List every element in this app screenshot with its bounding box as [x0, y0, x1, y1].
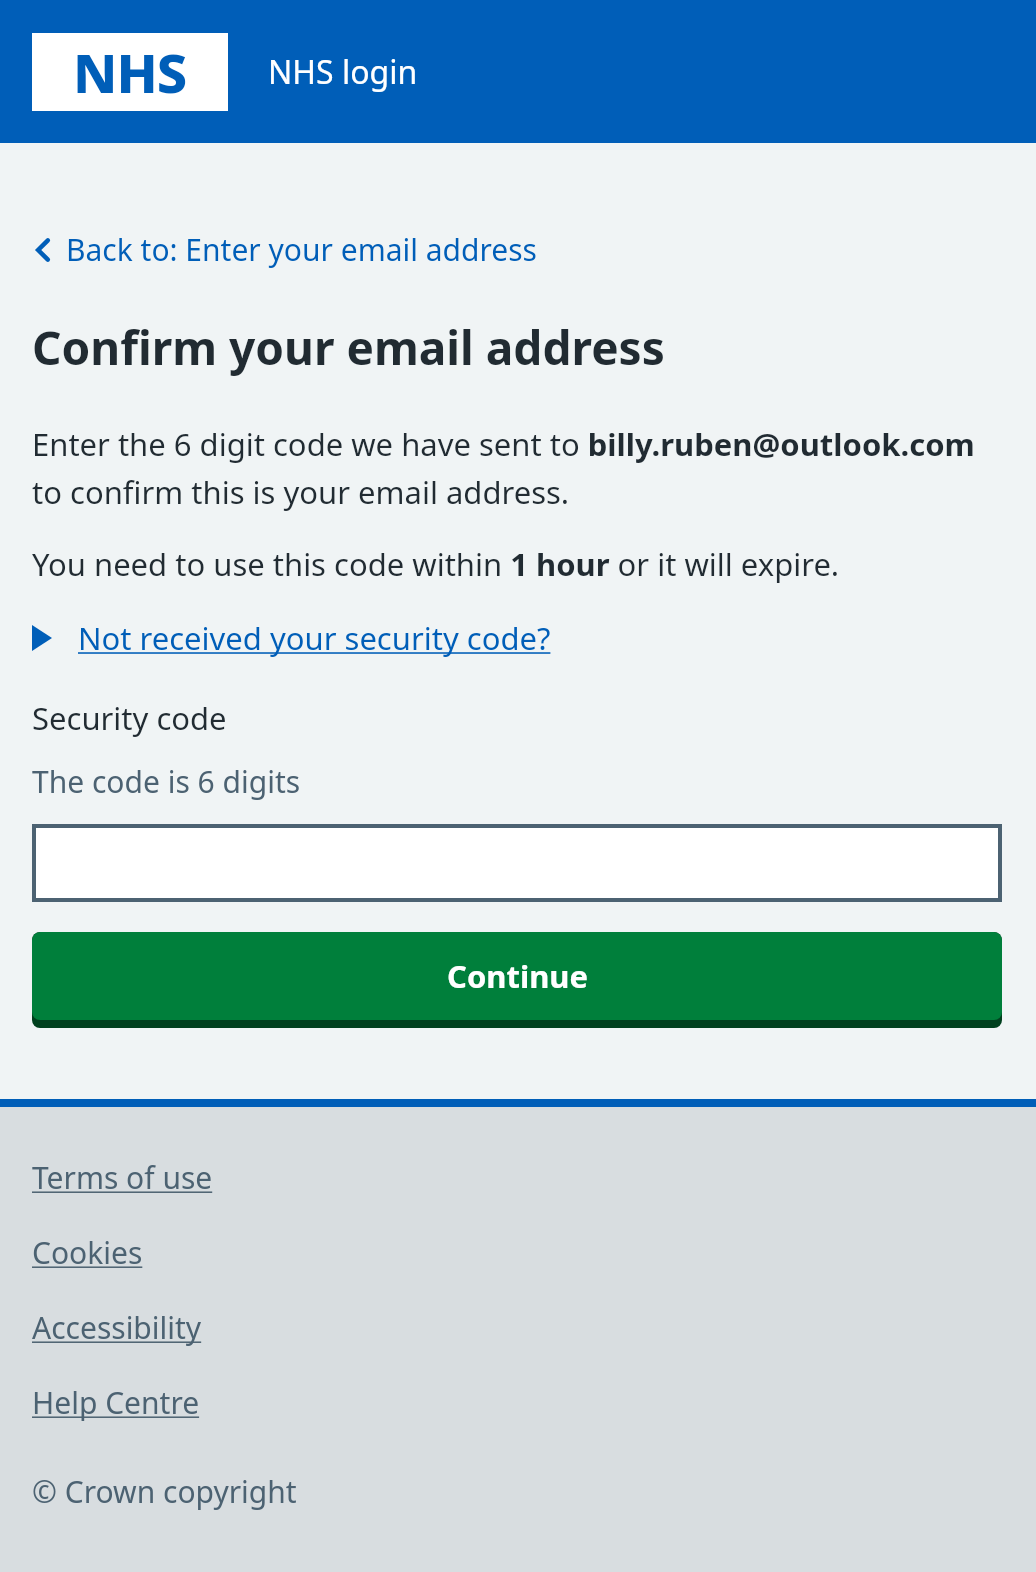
button[interactable]: Help Centre — [32, 1380, 200, 1425]
staticText: Enter the 6 digit code we have sent to b… — [32, 423, 1002, 513]
staticText: © Crown copyright — [32, 1471, 297, 1512]
staticText: Help Centre — [32, 1382, 200, 1423]
staticText: You need to use this code within 1 hour … — [32, 543, 840, 585]
button[interactable]: Cookies — [32, 1230, 143, 1275]
staticText: NHS — [73, 35, 187, 109]
staticText: Cookies — [32, 1232, 143, 1273]
button[interactable]: Continue — [32, 932, 1002, 1028]
staticText: NHS login — [268, 50, 418, 94]
staticText: Confirm your email address — [32, 316, 665, 379]
button[interactable]: Back to: Enter your email address — [32, 225, 537, 274]
button[interactable]: Security code input — [32, 824, 1002, 902]
staticText: Continue — [447, 955, 588, 997]
button[interactable]: Accessibility — [32, 1305, 202, 1350]
staticText: Back to: Enter your email address — [66, 229, 537, 270]
button[interactable]: NHS home — [32, 33, 228, 111]
staticText: Accessibility — [32, 1307, 202, 1348]
button[interactable]: Terms of use — [32, 1155, 213, 1200]
staticText: Terms of use — [32, 1157, 213, 1198]
staticText: Security code — [32, 697, 227, 739]
button[interactable]: Not received your security code? — [32, 615, 551, 661]
staticText: Not received your security code? — [78, 617, 551, 659]
staticText: The code is 6 digits — [32, 761, 301, 802]
